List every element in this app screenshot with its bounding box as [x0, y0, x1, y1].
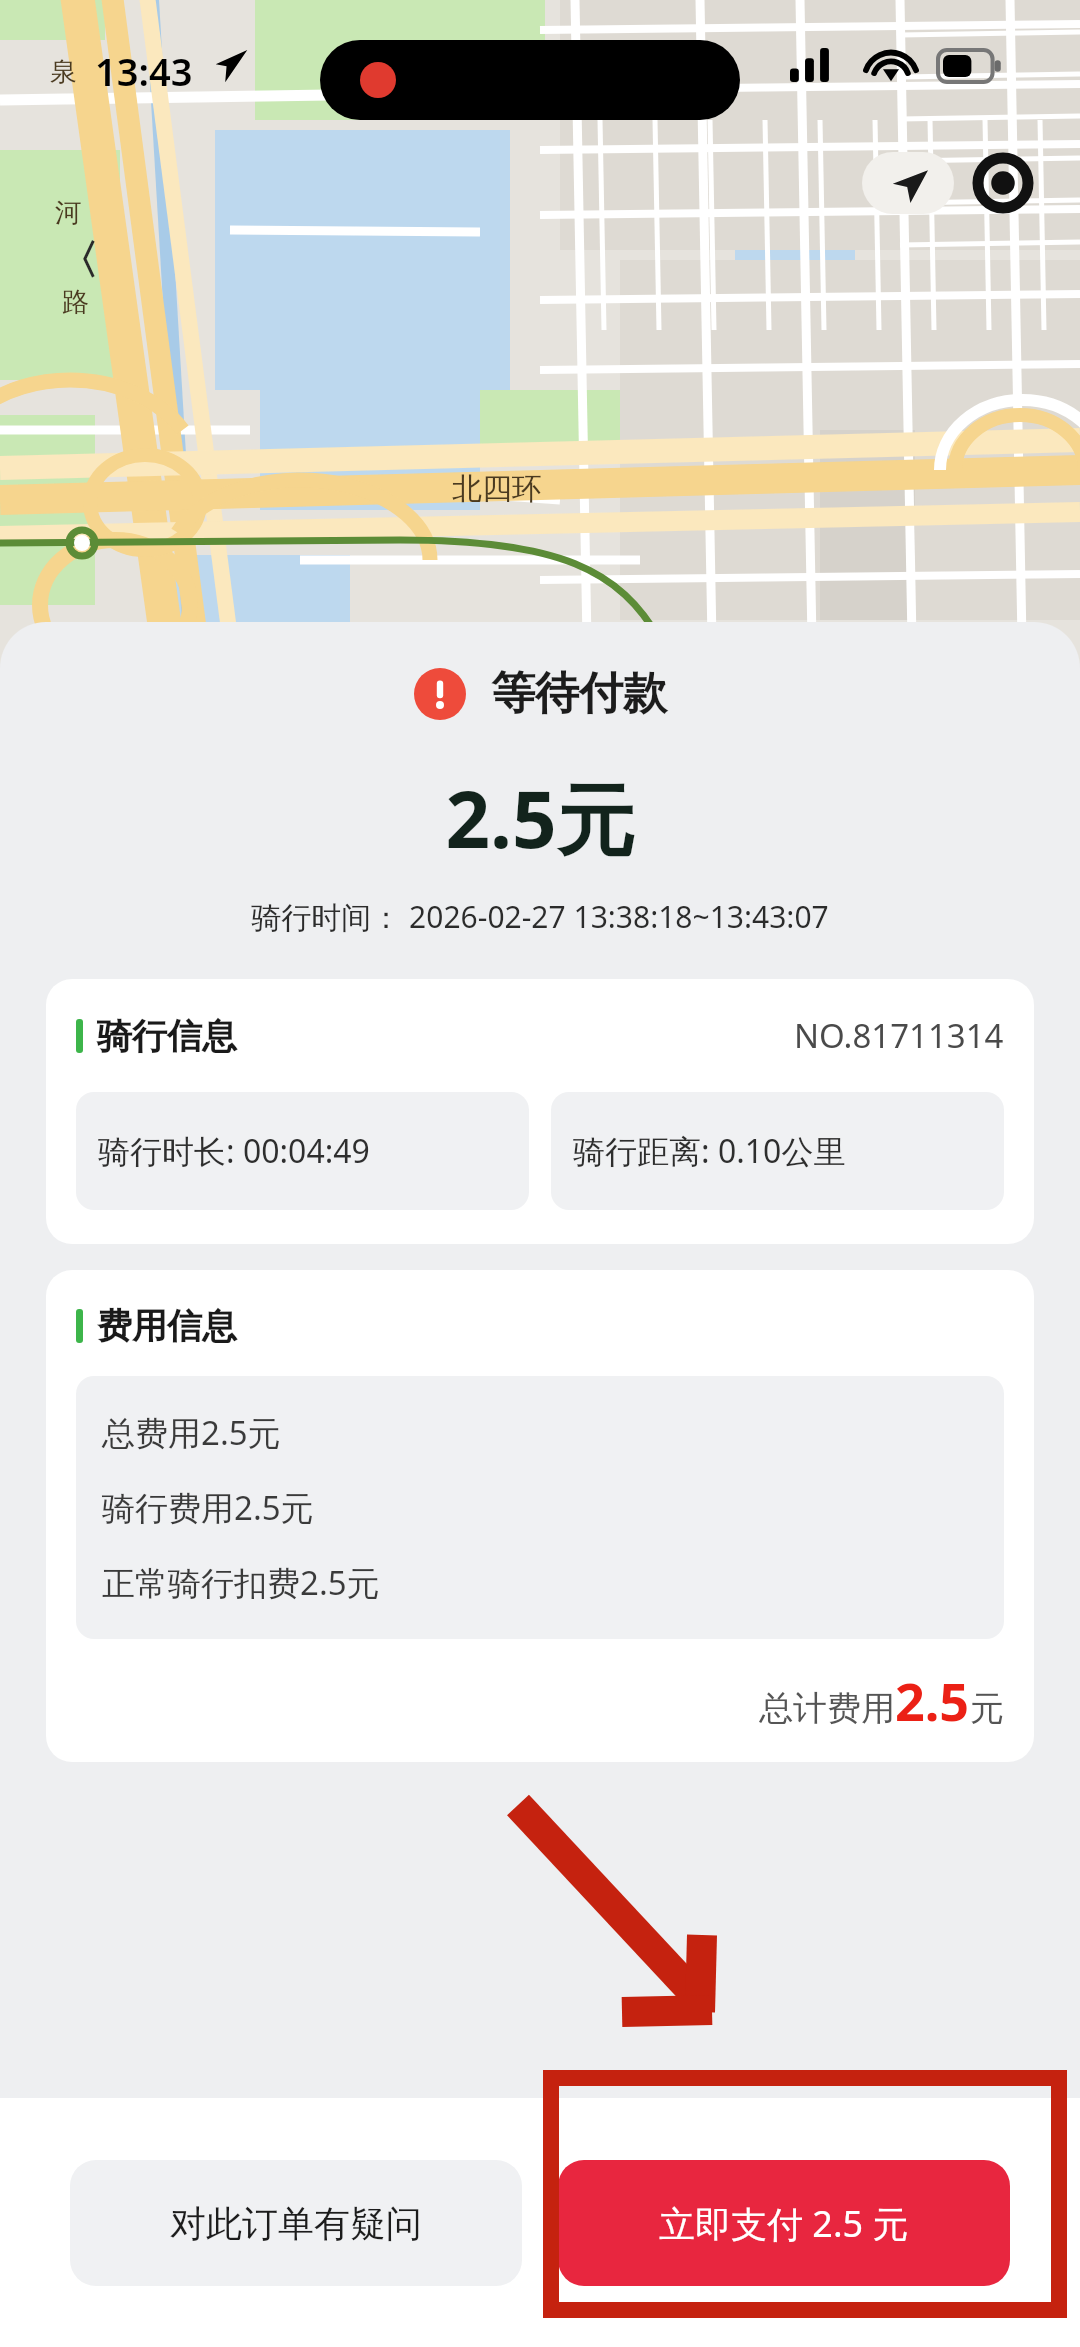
button[interactable]: 骑行时长: 00:04:49: [76, 1092, 529, 1210]
staticText: 对此订单有疑问: [170, 2201, 422, 2246]
button[interactable]: Navigate: [862, 152, 954, 214]
button[interactable]: 骑行距离: 0.10公里: [551, 1092, 1004, 1210]
staticText: 等待付款: [491, 666, 667, 721]
staticText: 13:43: [95, 45, 193, 97]
staticText: 总计费用: [759, 1687, 895, 1730]
staticText: 总费用2.5元: [102, 1410, 281, 1455]
staticText: NO.81711314: [794, 1013, 1004, 1058]
staticText: 骑行时长: 00:04:49: [98, 1129, 370, 1173]
staticText: 2.5元: [0, 765, 1080, 872]
staticText: 费用信息: [97, 1304, 237, 1348]
button[interactable]: 立即支付 2.5 元: [558, 2160, 1010, 2286]
staticText: 骑行费用2.5元: [102, 1485, 314, 1530]
staticText: 北四环: [452, 470, 542, 508]
staticText: 骑行距离: 0.10公里: [573, 1129, 846, 1173]
staticText: 立即支付 2.5 元: [659, 2199, 909, 2248]
staticText: 路: [62, 285, 89, 319]
button[interactable]: My location: [975, 155, 1031, 211]
button[interactable]: 对此订单有疑问: [70, 2160, 522, 2286]
staticText: 〈: [58, 235, 98, 285]
staticText: 河: [55, 196, 82, 230]
staticText: 骑行信息: [97, 1014, 237, 1058]
staticText: 骑行时间： 2026-02-27 13:38:18~13:43:07: [0, 896, 1080, 937]
staticText: 元: [970, 1687, 1004, 1730]
staticText: 正常骑行扣费2.5元: [102, 1560, 380, 1605]
staticText: 2.5: [895, 1665, 970, 1736]
staticText: 泉: [50, 55, 77, 89]
